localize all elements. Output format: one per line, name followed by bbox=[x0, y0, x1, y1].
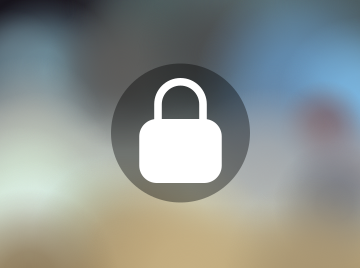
button[interactable]: Locked content bbox=[0, 0, 360, 268]
